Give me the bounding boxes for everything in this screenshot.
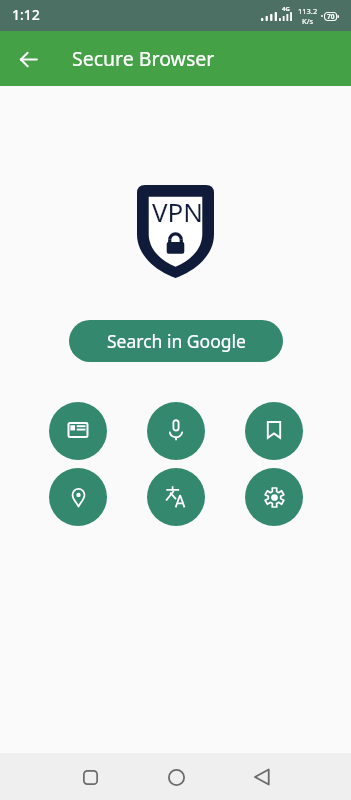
button[interactable]: Settings — [245, 468, 303, 526]
staticText: 70 — [327, 12, 335, 21]
button[interactable]: Back — [8, 39, 48, 79]
staticText: 113.2 — [298, 6, 318, 16]
button[interactable]: Voice search — [147, 402, 205, 460]
staticText: Search in Google — [107, 329, 246, 353]
staticText: Secure Browser — [72, 45, 215, 72]
button[interactable]: News — [49, 402, 107, 460]
button[interactable]: Translate — [147, 468, 205, 526]
button[interactable]: Location — [49, 468, 107, 526]
button[interactable]: Recents — [68, 755, 112, 799]
button[interactable]: Home — [154, 755, 198, 799]
staticText: K/s — [302, 16, 314, 26]
button[interactable]: Back — [240, 755, 284, 799]
staticText: VPN — [152, 194, 204, 229]
button[interactable]: Search in Google — [69, 320, 283, 362]
staticText: 4G — [282, 5, 290, 13]
button[interactable]: Bookmarks — [245, 402, 303, 460]
staticText: 1:12 — [12, 5, 40, 24]
